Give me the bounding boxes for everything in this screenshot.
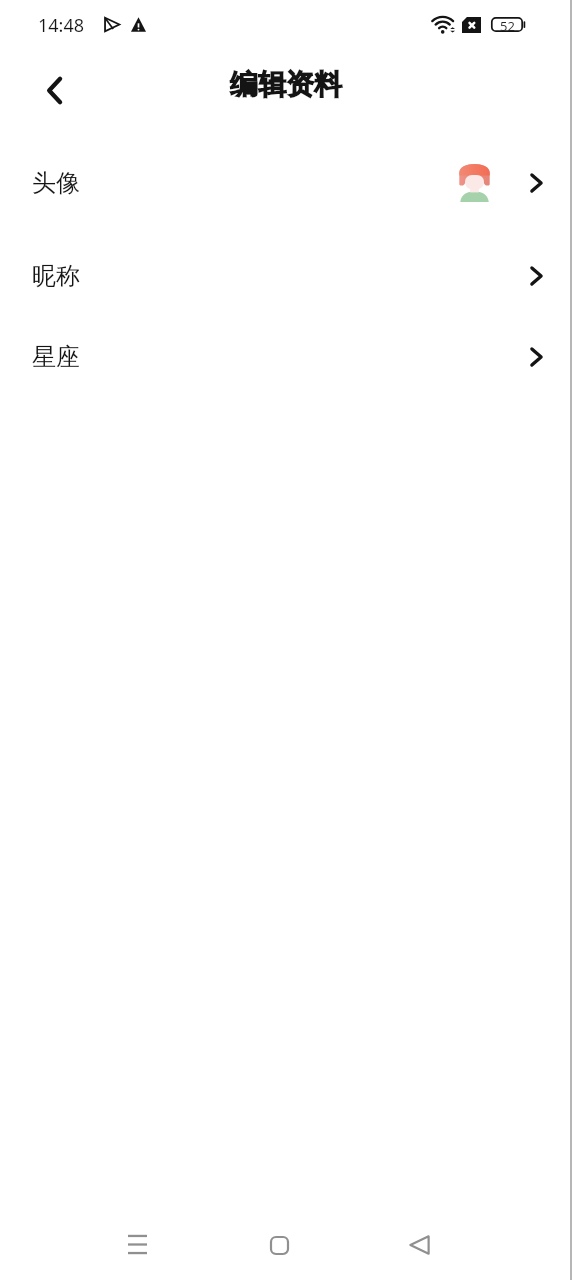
button[interactable]: 昵称 bbox=[0, 236, 572, 316]
staticText: 星座 bbox=[32, 342, 80, 372]
staticText: 昵称 bbox=[32, 261, 80, 291]
button[interactable]: Back bbox=[389, 1215, 449, 1275]
button[interactable]: Recent apps bbox=[107, 1214, 167, 1274]
staticText: 52 bbox=[500, 17, 515, 32]
staticText: 编辑资料 bbox=[230, 67, 342, 102]
button[interactable]: 头像 bbox=[0, 143, 572, 223]
button[interactable]: 星座 bbox=[0, 317, 572, 397]
staticText: 14:48 bbox=[38, 13, 85, 38]
staticText: 头像 bbox=[32, 168, 80, 198]
button[interactable]: Back bbox=[29, 65, 79, 115]
button[interactable]: Home bbox=[249, 1215, 309, 1275]
